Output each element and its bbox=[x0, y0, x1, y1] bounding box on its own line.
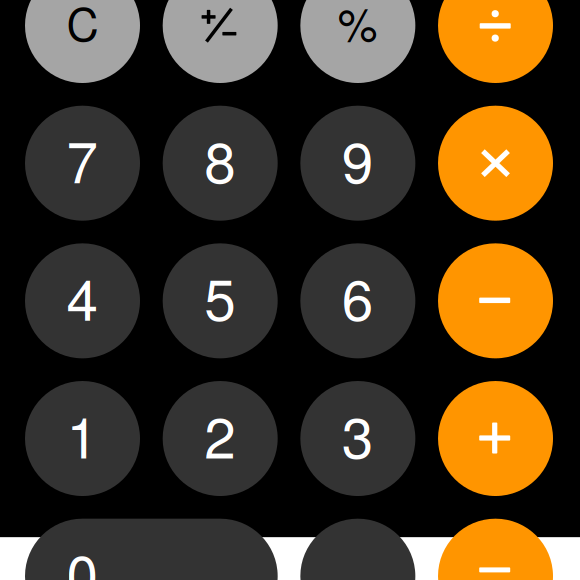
staticText: 9 bbox=[342, 118, 374, 199]
button[interactable]: 9 bbox=[300, 106, 415, 221]
button[interactable]: 5 bbox=[163, 243, 278, 358]
button[interactable]: 8 bbox=[163, 106, 278, 221]
button[interactable]: C bbox=[25, 0, 140, 83]
staticText: 4 bbox=[66, 256, 98, 337]
staticText: 7 bbox=[66, 118, 98, 199]
button[interactable]: % bbox=[300, 0, 415, 83]
button[interactable]: Multiply bbox=[438, 106, 553, 221]
button[interactable]: 2 bbox=[163, 381, 278, 496]
button[interactable]: 4 bbox=[25, 243, 140, 358]
staticText: 0 bbox=[66, 531, 98, 580]
button[interactable]: Plus bbox=[438, 381, 553, 496]
button[interactable]: . bbox=[300, 519, 415, 580]
button[interactable]: Plus Minus bbox=[163, 0, 278, 83]
staticText: C bbox=[66, 0, 98, 54]
button[interactable]: Divide bbox=[438, 0, 553, 83]
staticText: 1 bbox=[66, 393, 98, 474]
staticText: 8 bbox=[204, 118, 236, 199]
staticText: % bbox=[338, 0, 378, 54]
button[interactable]: 7 bbox=[25, 106, 140, 221]
button[interactable]: 0 bbox=[25, 519, 278, 580]
button[interactable]: Equals bbox=[438, 519, 553, 580]
button[interactable]: 3 bbox=[300, 381, 415, 496]
staticText: 6 bbox=[342, 256, 374, 337]
button[interactable]: Minus bbox=[438, 243, 553, 358]
staticText: 5 bbox=[204, 256, 236, 337]
staticText: 2 bbox=[204, 393, 236, 474]
button[interactable]: 6 bbox=[300, 243, 415, 358]
button[interactable]: 1 bbox=[25, 381, 140, 496]
staticText: 3 bbox=[342, 393, 374, 474]
